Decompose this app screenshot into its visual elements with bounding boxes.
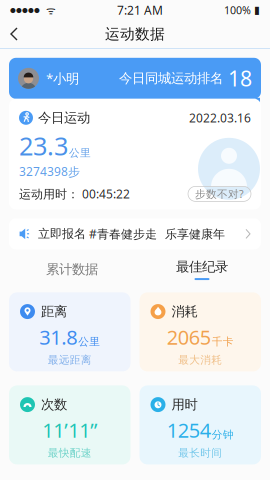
staticText: 100% <box>224 3 251 17</box>
button[interactable]: Back <box>0 20 28 48</box>
staticText: 7:21 AM <box>117 2 163 18</box>
staticText: 18 <box>228 64 252 92</box>
staticText: 2022.03.16 <box>189 110 251 126</box>
staticText: 公里 <box>78 335 100 348</box>
staticText: 1254 <box>167 417 211 443</box>
staticText: 23.3 <box>19 129 68 162</box>
staticText: 次数 <box>41 396 67 413</box>
staticText: 距离 <box>41 303 67 320</box>
staticText: 立即报名 <box>38 226 86 241</box>
staticText: 累计数据 <box>46 261 98 278</box>
staticText: 运动数据 <box>105 25 165 43</box>
staticText: ᯤ <box>40 3 56 17</box>
button[interactable]: 步数不对? <box>188 186 251 201</box>
staticText: *小明 <box>46 69 79 87</box>
button[interactable]: 最佳纪录 <box>170 259 234 279</box>
staticText: 分钟 <box>212 428 234 441</box>
staticText: 2065 <box>167 324 211 350</box>
staticText: 用时 <box>171 396 197 413</box>
staticText: 31.8 <box>39 324 77 350</box>
staticText: 最大消耗 <box>178 353 222 366</box>
button[interactable]: 立即报名 <box>0 209 270 249</box>
staticText: 千卡 <box>212 335 234 348</box>
staticText: #青春健步走 乐享健康年 <box>86 226 225 242</box>
staticText: 最快配速 <box>48 446 92 459</box>
staticText: 消耗 <box>171 303 197 320</box>
staticText: 11’11” <box>42 417 97 443</box>
staticText: 今日运动 <box>38 110 90 126</box>
staticText: ●●●●● <box>10 6 40 14</box>
staticText: 最佳纪录 <box>176 259 228 275</box>
staticText: 今日同城运动排名 <box>119 70 223 86</box>
staticText: 3274398步 <box>19 163 80 179</box>
staticText: 公里 <box>69 146 91 159</box>
staticText: 步数不对? <box>195 187 244 201</box>
button[interactable]: 累计数据 <box>40 259 104 279</box>
staticText: 最长时间 <box>178 446 222 459</box>
staticText: ▮ <box>251 4 260 16</box>
staticText: 最远距离 <box>48 353 92 366</box>
staticText: 运动用时： 00:45:22 <box>19 186 130 202</box>
